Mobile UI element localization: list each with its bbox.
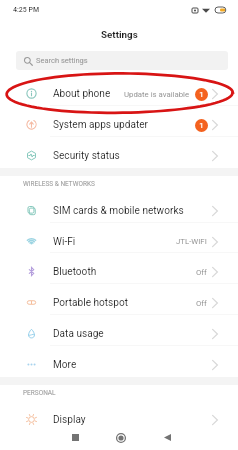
button[interactable]: Home — [106, 428, 136, 447]
staticText: Display — [53, 414, 86, 426]
staticText: JTL-WIFI — [176, 237, 207, 246]
staticText: 1 — [199, 90, 204, 99]
button[interactable]: About phone — [0, 75, 238, 106]
staticText: System apps updater — [53, 119, 149, 131]
button[interactable]: Back — [152, 428, 182, 447]
button[interactable]: SIM cards & mobile networks — [0, 192, 238, 223]
staticText: Bluetooth — [53, 266, 97, 278]
button[interactable]: System apps updater — [0, 106, 238, 137]
staticText: 4:25 PM — [13, 6, 40, 14]
button[interactable]: Search settings — [16, 51, 228, 70]
staticText: Off — [196, 268, 207, 277]
button[interactable]: Bluetooth — [0, 253, 238, 284]
staticText: Off — [196, 299, 207, 308]
button[interactable]: Data usage — [0, 315, 238, 346]
staticText: PERSONAL — [23, 389, 56, 397]
button[interactable]: Security status — [0, 137, 238, 168]
staticText: Portable hotspot — [53, 297, 129, 309]
staticText: More — [53, 359, 77, 371]
staticText: 1 — [199, 121, 204, 130]
button[interactable]: Wi-Fi — [0, 223, 238, 253]
staticText: Search settings — [36, 56, 88, 65]
staticText: Wi-Fi — [53, 236, 76, 248]
staticText: Data usage — [53, 328, 104, 340]
staticText: SIM cards & mobile networks — [53, 205, 184, 217]
staticText: Security status — [53, 150, 120, 162]
staticText: Settings — [101, 29, 138, 40]
button[interactable]: Recents — [60, 428, 90, 447]
staticText: Update is available — [124, 90, 190, 99]
staticText: About phone — [53, 88, 111, 100]
button[interactable]: Display — [0, 401, 238, 432]
button[interactable]: Portable hotspot — [0, 284, 238, 315]
button[interactable]: More — [0, 346, 238, 377]
staticText: WIRELESS & NETWORKS — [23, 180, 95, 188]
